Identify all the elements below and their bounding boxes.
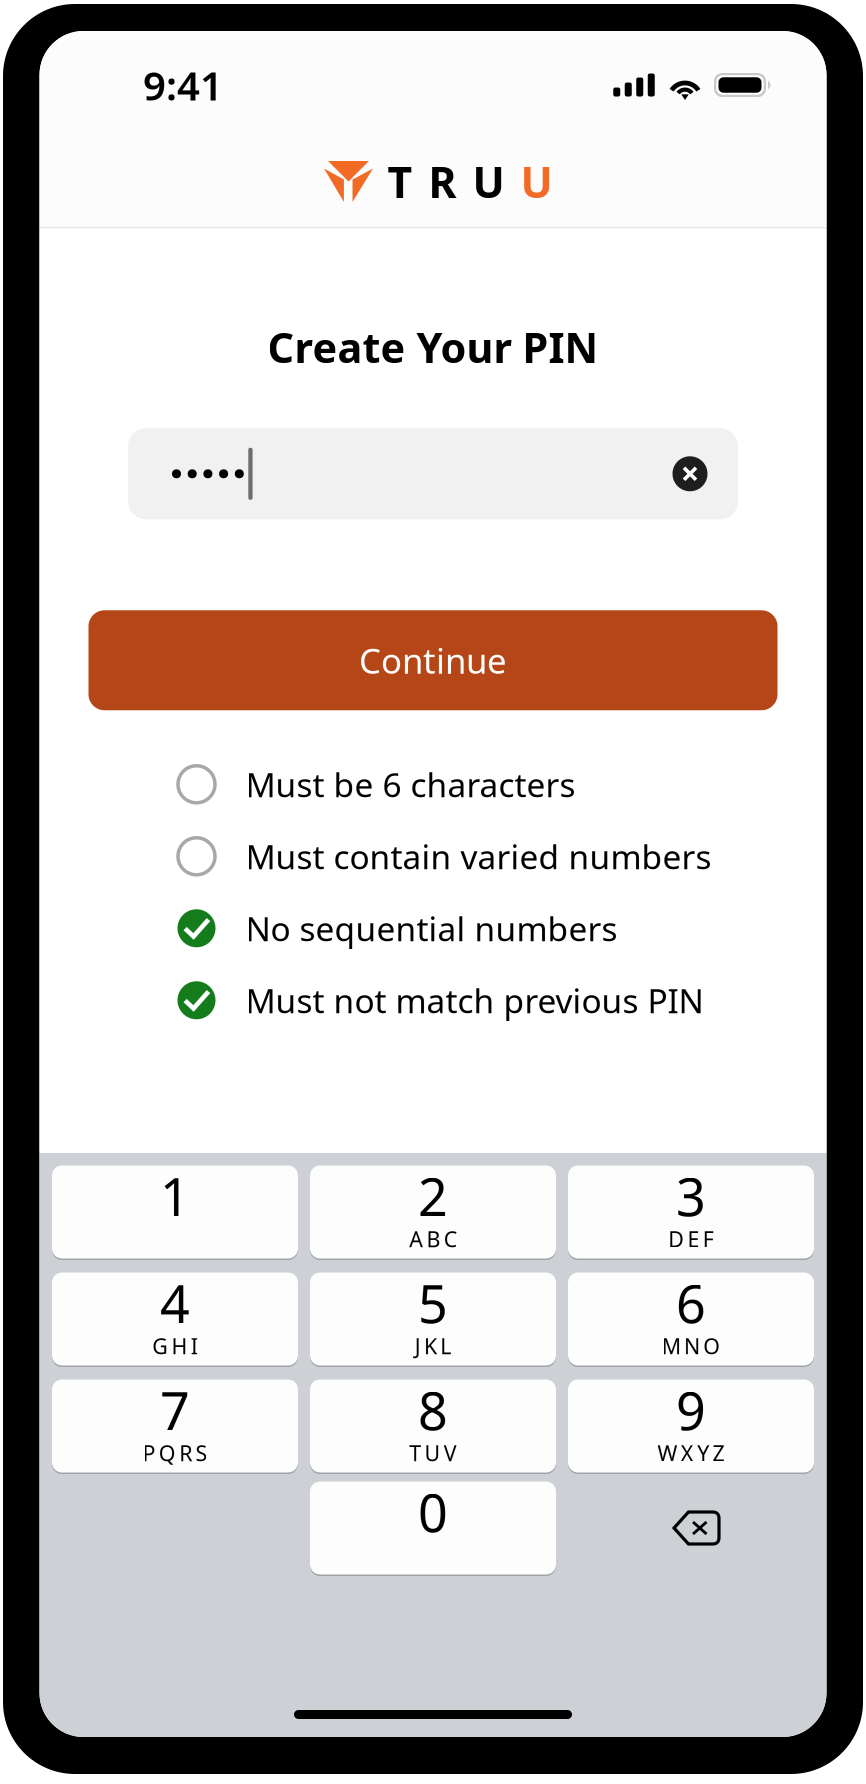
staticText: 1 bbox=[160, 1161, 190, 1231]
staticText: 4 bbox=[160, 1268, 190, 1338]
button[interactable]: 2 bbox=[310, 1164, 556, 1260]
staticText: 8 bbox=[418, 1375, 448, 1445]
staticText: Must contain varied numbers bbox=[245, 834, 711, 878]
button[interactable]: 9 bbox=[568, 1378, 814, 1474]
staticText: 3 bbox=[676, 1161, 706, 1231]
button[interactable]: Delete bbox=[568, 1480, 814, 1576]
staticText: Must not match previous PIN bbox=[245, 978, 703, 1022]
staticText: 7 bbox=[160, 1375, 190, 1445]
button[interactable]: 8 bbox=[310, 1378, 556, 1474]
staticText: WXYZ bbox=[658, 1439, 724, 1467]
staticText: 9:41 bbox=[143, 58, 223, 111]
staticText: Continue bbox=[359, 637, 507, 683]
button[interactable]: Continue bbox=[88, 610, 777, 710]
button[interactable]: 7 bbox=[52, 1378, 298, 1474]
button[interactable]: 0 bbox=[310, 1480, 556, 1576]
staticText: 5 bbox=[418, 1268, 448, 1338]
staticText: MNO bbox=[662, 1332, 720, 1360]
staticText: DEF bbox=[668, 1225, 714, 1253]
button[interactable]: 1 bbox=[52, 1164, 298, 1260]
staticText: ABC bbox=[409, 1225, 457, 1253]
staticText: T bbox=[387, 153, 412, 210]
staticText: JKL bbox=[415, 1332, 451, 1360]
button[interactable]: 3 bbox=[568, 1164, 814, 1260]
staticText: 2 bbox=[418, 1161, 448, 1231]
staticText: U bbox=[520, 153, 552, 210]
staticText: No sequential numbers bbox=[245, 906, 617, 950]
staticText: Create Your PIN bbox=[267, 319, 598, 374]
staticText: TUV bbox=[409, 1439, 457, 1467]
button[interactable]: 6 bbox=[568, 1271, 814, 1367]
staticText: U bbox=[472, 153, 504, 210]
button[interactable]: 5 bbox=[310, 1271, 556, 1367]
staticText: 9 bbox=[676, 1375, 706, 1445]
button[interactable]: 4 bbox=[52, 1271, 298, 1367]
staticText: PQRS bbox=[143, 1439, 207, 1467]
staticText: R bbox=[428, 153, 456, 210]
button[interactable]: Clear bbox=[666, 450, 714, 498]
staticText: 0 bbox=[418, 1477, 448, 1547]
staticText: GHI bbox=[152, 1332, 198, 1360]
staticText: Must be 6 characters bbox=[245, 762, 575, 806]
staticText: 6 bbox=[676, 1268, 706, 1338]
